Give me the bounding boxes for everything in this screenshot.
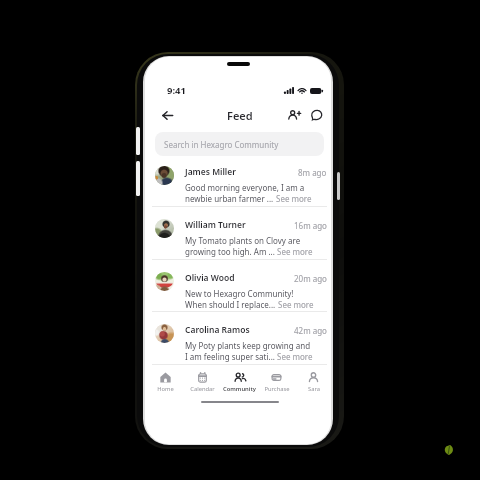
button[interactable]: Community	[221, 366, 258, 394]
staticText: My Poty plants keep growing and	[185, 340, 311, 351]
staticText: See more	[276, 193, 312, 204]
button[interactable]: Home	[146, 366, 184, 394]
staticText: My Tomato plants on Clovy are	[185, 235, 301, 246]
staticText: New to Hexagro Community!	[185, 288, 294, 299]
staticText: Community	[223, 385, 256, 393]
button[interactable]: William Turner	[145, 213, 331, 266]
staticText: Purchase	[264, 385, 290, 393]
staticText: growing too high. Am ...	[185, 246, 275, 257]
staticText: See more	[277, 351, 313, 362]
staticText: 16m ago	[294, 220, 327, 231]
staticText: Sara	[308, 385, 320, 393]
button[interactable]: Purchase	[258, 366, 295, 394]
staticText: Carolina Ramos	[185, 324, 250, 336]
staticText: 8m ago	[298, 167, 327, 178]
button[interactable]: Search in Hexagro Community	[155, 132, 324, 156]
button[interactable]: Olivia Wood	[145, 266, 331, 319]
staticText: James Miller	[185, 166, 236, 178]
staticText: Calendar	[190, 385, 215, 393]
staticText: Olivia Wood	[185, 272, 235, 284]
button[interactable]: Calendar	[184, 366, 221, 394]
staticText: 9:41	[167, 84, 186, 97]
button[interactable]: Back	[156, 104, 178, 126]
staticText: 20m ago	[294, 273, 327, 284]
staticText: Home	[157, 385, 174, 393]
staticText: William Turner	[185, 219, 246, 231]
button[interactable]: James Miller	[145, 160, 331, 213]
staticText: newbie urban farmer ...	[185, 193, 274, 204]
staticText: Search in Hexagro Community	[164, 139, 279, 150]
staticText: 42m ago	[294, 325, 327, 336]
staticText: Good morning everyone, I am a	[185, 182, 305, 193]
staticText: When should I replace...	[185, 299, 276, 310]
staticText: See more	[277, 246, 313, 257]
button[interactable]: Add member	[283, 104, 305, 126]
button[interactable]: Sara	[295, 366, 331, 394]
button[interactable]: Carolina Ramos	[145, 318, 331, 371]
staticText: Feed	[227, 108, 253, 123]
staticText: See more	[278, 299, 314, 310]
staticText: I am feeling super sati...	[185, 351, 275, 362]
button[interactable]: Messages	[305, 104, 327, 126]
